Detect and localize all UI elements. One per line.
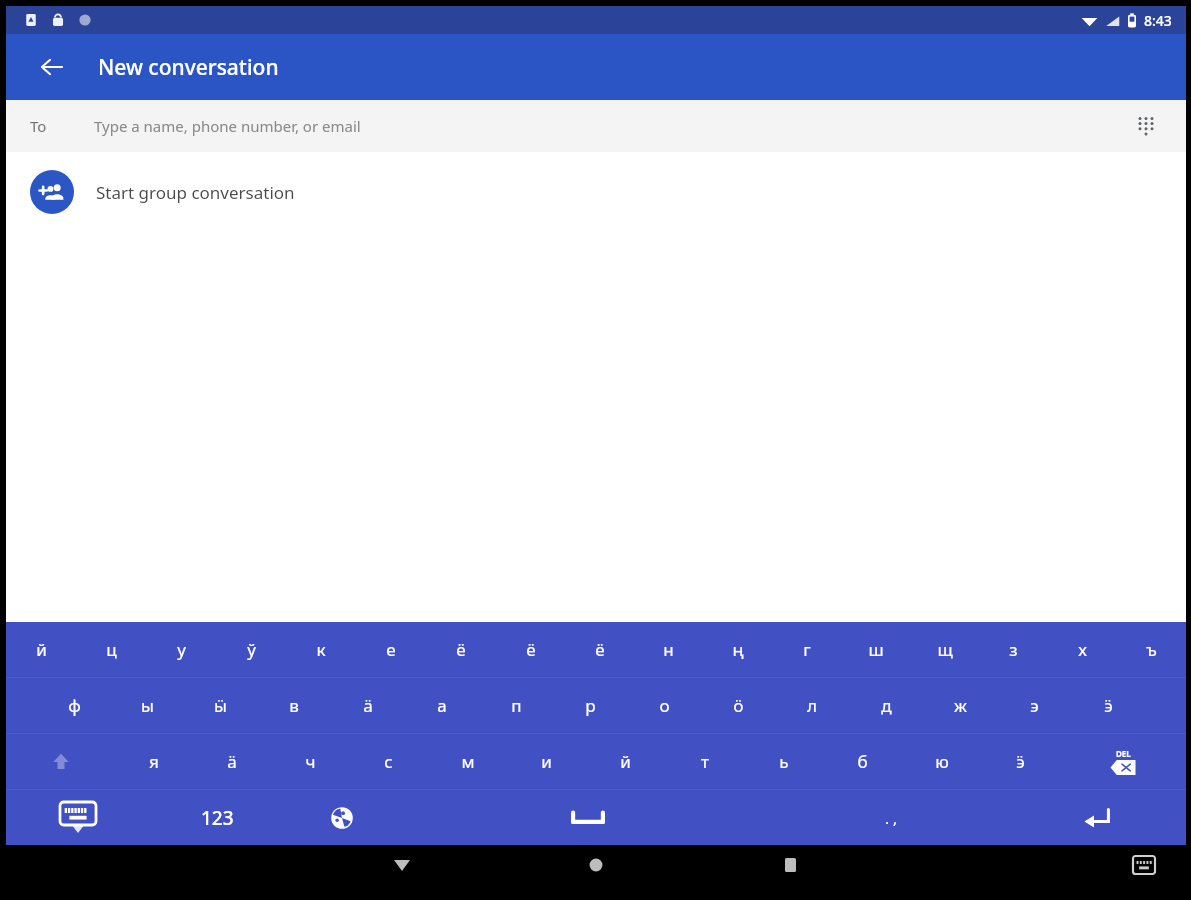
button[interactable]: Start group conversation: [6, 152, 1186, 232]
button[interactable]: Back: [380, 845, 424, 885]
staticText: ӭ: [1016, 750, 1025, 773]
button[interactable]: ч: [271, 734, 349, 789]
staticText: э: [1030, 694, 1039, 717]
staticText: з: [1009, 638, 1018, 661]
button[interactable]: Switch keyboard: [1124, 845, 1164, 885]
staticText: ч: [305, 750, 316, 773]
button[interactable]: о: [627, 678, 701, 733]
button[interactable]: х: [1048, 622, 1117, 677]
staticText: ӓ: [363, 694, 373, 717]
staticText: ы: [141, 694, 154, 717]
button[interactable]: ң: [703, 622, 772, 677]
button[interactable]: ӹ: [184, 678, 257, 733]
button[interactable]: м: [428, 734, 507, 789]
button[interactable]: ӓ: [193, 734, 271, 789]
button[interactable]: ӧ: [701, 678, 775, 733]
button[interactable]: ш: [841, 622, 910, 677]
staticText: ң: [732, 638, 744, 661]
button[interactable]: й: [586, 734, 665, 789]
button[interactable]: г: [772, 622, 841, 677]
button[interactable]: к: [286, 622, 356, 677]
button[interactable]: Home: [574, 845, 618, 885]
staticText: е: [386, 638, 396, 661]
staticText: . ,: [885, 808, 897, 828]
staticText: д: [881, 694, 892, 717]
staticText: New conversation: [98, 53, 279, 82]
button[interactable]: у: [146, 622, 216, 677]
staticText: х: [1078, 638, 1087, 661]
staticText: Type a name, phone number, or email: [94, 116, 361, 136]
staticText: п: [511, 694, 522, 717]
staticText: ю: [935, 750, 949, 773]
staticText: ж: [954, 694, 967, 717]
button[interactable]: ӭ: [1071, 678, 1145, 733]
button[interactable]: ь: [744, 734, 823, 789]
button[interactable]: й: [6, 622, 76, 677]
staticText: м: [461, 750, 475, 773]
button[interactable]: Dialpad: [1124, 104, 1168, 148]
button[interactable]: б: [823, 734, 902, 789]
staticText: ў: [247, 638, 256, 661]
staticText: щ: [937, 638, 953, 661]
button[interactable]: и: [507, 734, 586, 789]
staticText: To: [30, 116, 47, 136]
button[interactable]: . ,: [775, 790, 1007, 845]
staticText: г: [803, 638, 811, 661]
staticText: р: [585, 694, 596, 717]
button[interactable]: Back: [28, 43, 76, 91]
staticText: ӧ: [733, 694, 744, 717]
staticText: ё: [456, 638, 466, 661]
staticText: н: [663, 638, 674, 661]
staticText: й: [36, 638, 47, 661]
staticText: ш: [868, 638, 884, 661]
button[interactable]: ӓ: [331, 678, 405, 733]
button[interactable]: ӭ: [981, 734, 1060, 789]
staticText: к: [316, 638, 326, 661]
button[interactable]: ё: [565, 622, 634, 677]
staticText: а: [437, 694, 447, 717]
staticText: ц: [106, 638, 117, 661]
button[interactable]: р: [553, 678, 627, 733]
staticText: Start group conversation: [96, 181, 295, 204]
button[interactable]: щ: [910, 622, 979, 677]
staticText: б: [857, 750, 868, 773]
button[interactable]: 123: [150, 790, 284, 845]
button[interactable]: To: [6, 100, 1186, 152]
button[interactable]: ж: [923, 678, 997, 733]
staticText: л: [807, 694, 817, 717]
button[interactable]: ц: [76, 622, 146, 677]
button[interactable]: е: [356, 622, 426, 677]
button[interactable]: ю: [902, 734, 981, 789]
button[interactable]: п: [479, 678, 553, 733]
button[interactable]: Enter: [1007, 790, 1186, 845]
staticText: ъ: [1146, 638, 1157, 661]
button[interactable]: Shift: [6, 734, 115, 789]
button[interactable]: л: [775, 678, 849, 733]
button[interactable]: з: [979, 622, 1048, 677]
button[interactable]: Space: [400, 790, 775, 845]
staticText: и: [541, 750, 552, 773]
button[interactable]: д: [849, 678, 923, 733]
button[interactable]: Hide keyboard: [6, 790, 150, 845]
button[interactable]: в: [257, 678, 331, 733]
button[interactable]: Recents: [768, 845, 812, 885]
button[interactable]: Change language: [284, 790, 400, 845]
button[interactable]: с: [349, 734, 428, 789]
button[interactable]: т: [665, 734, 744, 789]
button[interactable]: я: [115, 734, 193, 789]
button[interactable]: ъ: [1117, 622, 1186, 677]
button[interactable]: э: [997, 678, 1071, 733]
button[interactable]: ф: [38, 678, 111, 733]
button[interactable]: ў: [216, 622, 286, 677]
button[interactable]: н: [634, 622, 703, 677]
button[interactable]: ё: [426, 622, 496, 677]
button[interactable]: Delete: [1060, 734, 1186, 789]
staticText: я: [149, 750, 159, 773]
button[interactable]: ы: [111, 678, 184, 733]
button[interactable]: а: [405, 678, 479, 733]
staticText: 8:43: [1144, 11, 1172, 30]
staticText: ӭ: [1104, 694, 1113, 717]
staticText: й: [620, 750, 631, 773]
staticText: DEL: [1116, 748, 1131, 759]
button[interactable]: ё: [496, 622, 565, 677]
